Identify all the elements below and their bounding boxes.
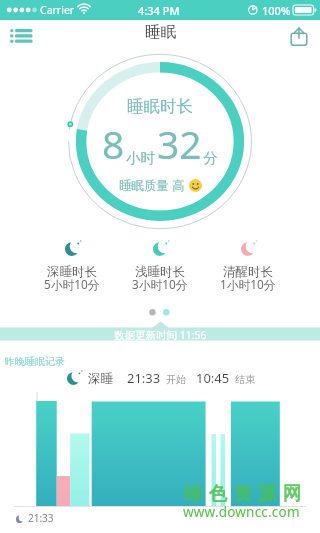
staticText: 1小时10分 [220,276,276,292]
staticText: 3小时10分 [132,276,188,292]
staticText: 数据更新时间 11:56 [114,328,207,342]
staticText: 浅睡时长 [135,264,185,280]
staticText: www.downcc.com [183,503,300,521]
staticText: 小时 [126,149,155,167]
staticText: 深睡 [88,371,113,387]
staticText: 昨晚睡眠记录 [5,355,65,368]
button[interactable]: 清醒时长 [204,264,292,296]
staticText: 5小时10分 [44,276,100,292]
staticText: 清醒时长 [223,264,273,280]
staticText: 100% [262,3,291,18]
staticText: 21:33 [127,369,161,387]
staticText: 分 [203,149,218,167]
staticText: Carrier [40,3,75,17]
staticText: 开始 [166,373,186,386]
staticText: 深睡时长 [47,264,97,280]
staticText: 绿色资源网 [184,482,308,505]
button[interactable]: Share [282,20,316,52]
staticText: 睡眠质量 高 [119,177,185,194]
staticText: 4:34 PM [138,3,180,18]
staticText: 32 [157,117,202,170]
staticText: 结束 [235,373,255,386]
staticText: 21:33 [28,511,54,525]
button[interactable]: 深睡时长 [28,264,116,296]
staticText: 睡眠 [145,22,176,42]
button[interactable]: 浅睡时长 [116,264,204,296]
button[interactable]: Menu [4,20,38,52]
staticText: 10:45 [196,369,230,387]
staticText: 8 [102,117,125,170]
staticText: 睡眠时长 [127,96,193,117]
